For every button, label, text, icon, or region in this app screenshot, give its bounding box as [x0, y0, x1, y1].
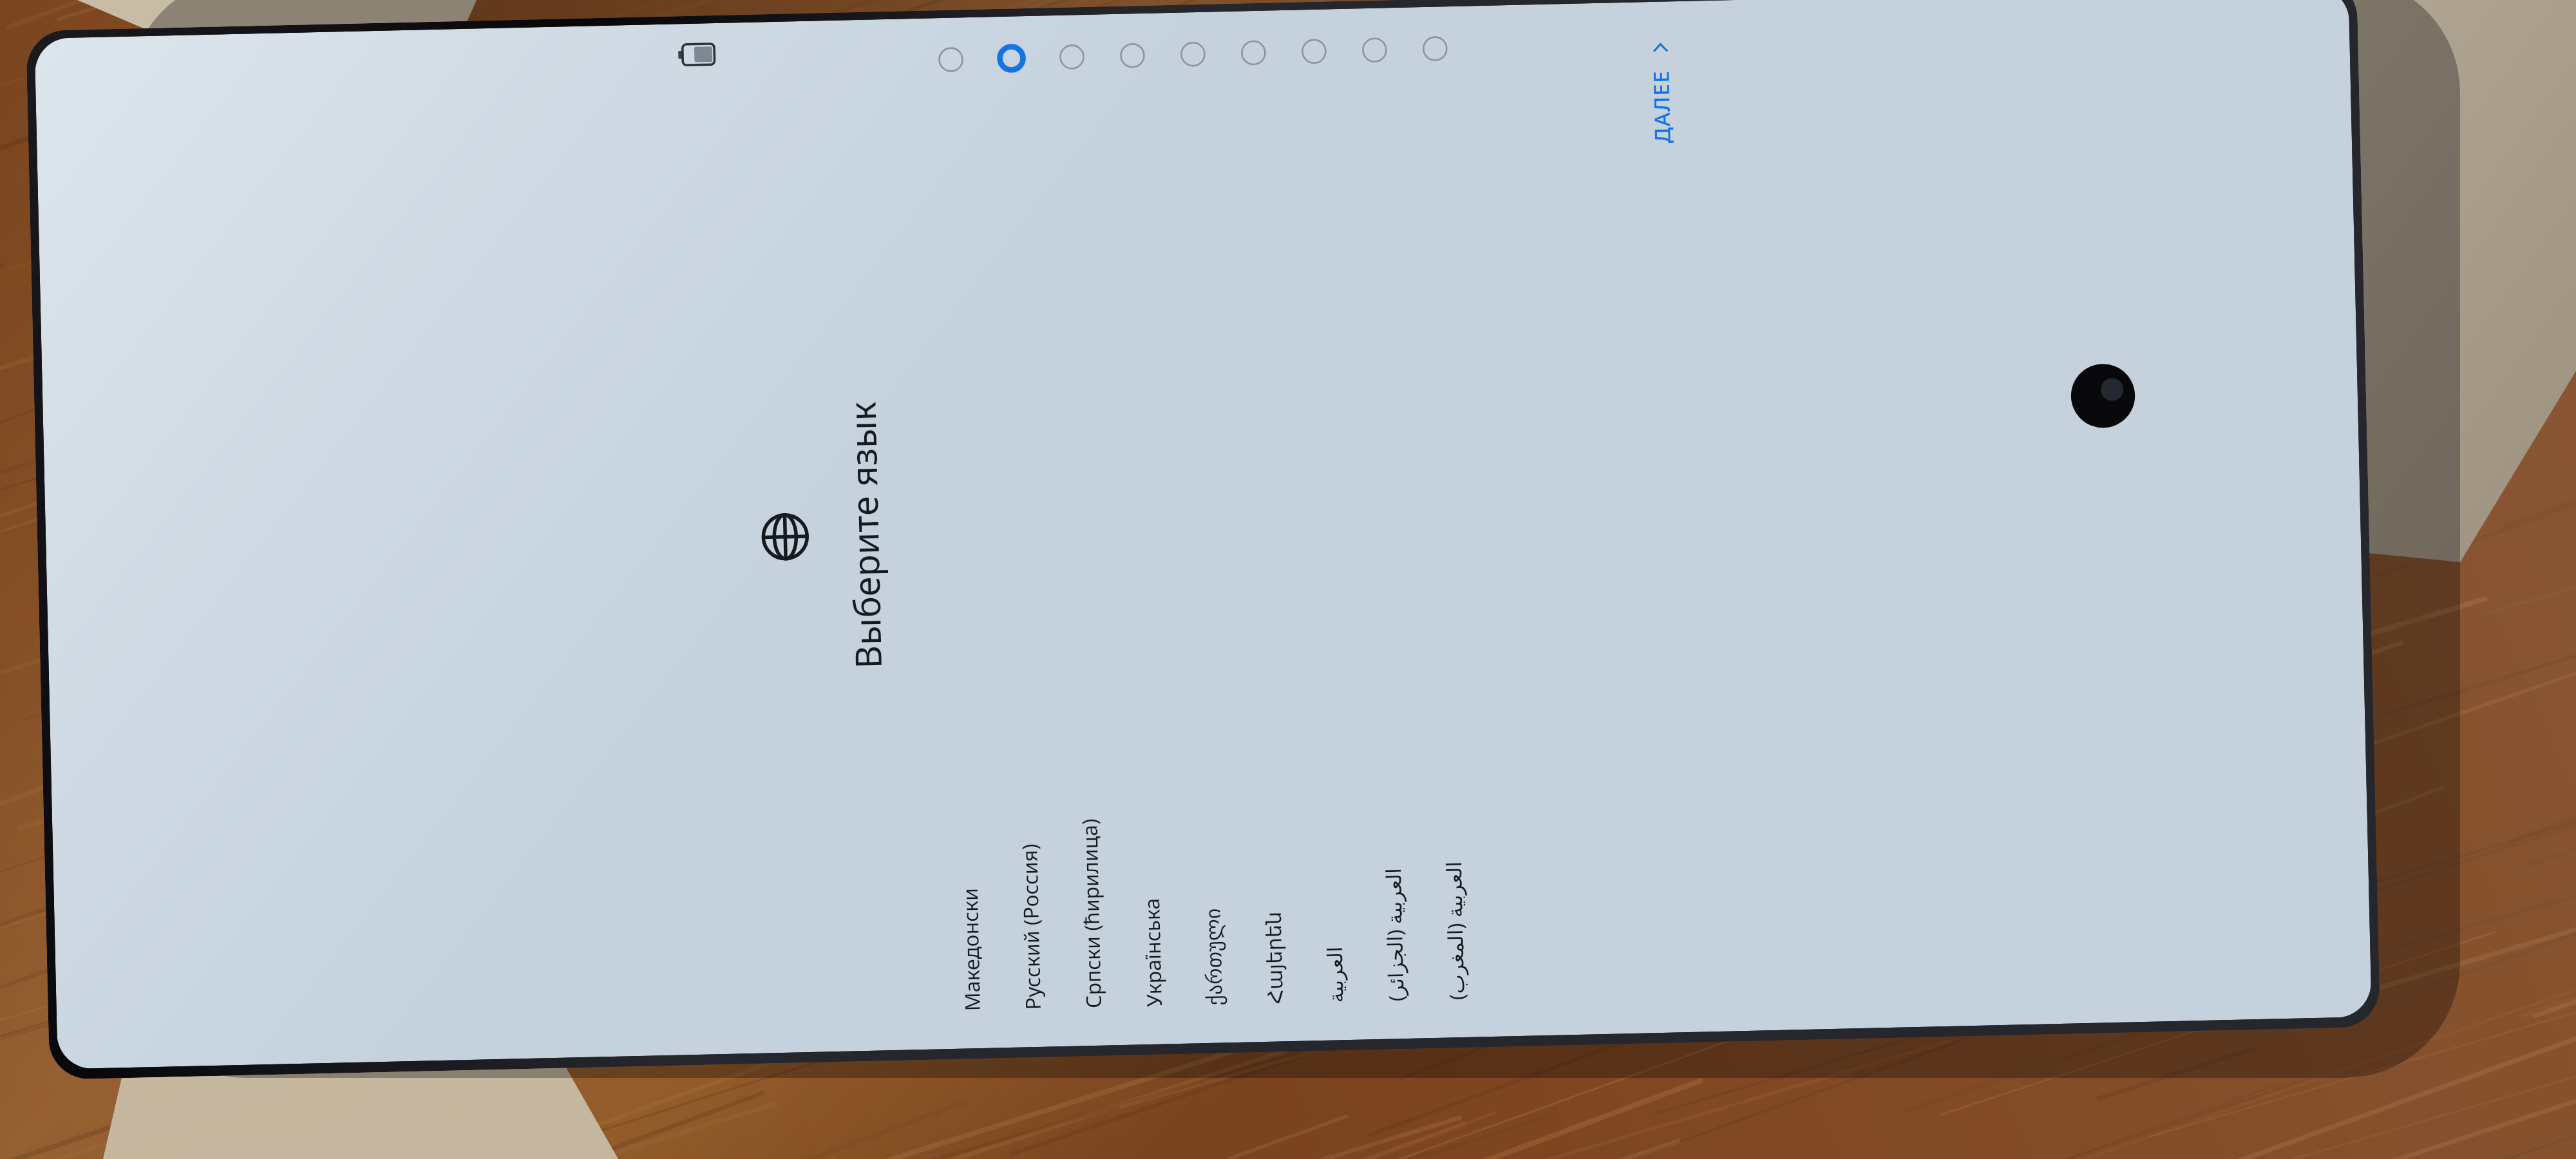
button[interactable]: ქართული: [1162, 12, 1246, 1044]
button[interactable]: Српски (ћирилица): [1041, 14, 1125, 1046]
other: Language: [760, 511, 811, 562]
button[interactable]: Հայերեն: [1222, 10, 1306, 1042]
staticText: العربية (المغرب): [1421, 62, 1471, 1000]
staticText: Выберите язык: [828, 19, 901, 1051]
staticText: ქართული: [1182, 67, 1227, 1006]
button[interactable]: Українська: [1101, 13, 1185, 1045]
staticText: Українська: [1119, 69, 1168, 1007]
button[interactable]: العربية (المغرب): [1404, 6, 1488, 1038]
staticText: ДАЛЕЕ: [1646, 70, 1677, 144]
staticText: Српски (ћирилица): [1058, 70, 1108, 1009]
staticText: Հայերեն: [1242, 66, 1287, 1005]
staticText: Русский (Россия): [998, 71, 1047, 1010]
button[interactable]: Русский (Россия): [980, 16, 1064, 1048]
staticText: العربية (الجزائر): [1361, 63, 1410, 1002]
button[interactable]: العربية: [1283, 9, 1367, 1041]
staticText: Македонски: [937, 73, 987, 1011]
button[interactable]: Македонски: [920, 17, 1004, 1049]
button[interactable]: العربية (الجزائر): [1343, 8, 1427, 1039]
staticText: العربية: [1303, 65, 1348, 1003]
button[interactable]: ДАЛЕЕ: [1635, 23, 1687, 158]
